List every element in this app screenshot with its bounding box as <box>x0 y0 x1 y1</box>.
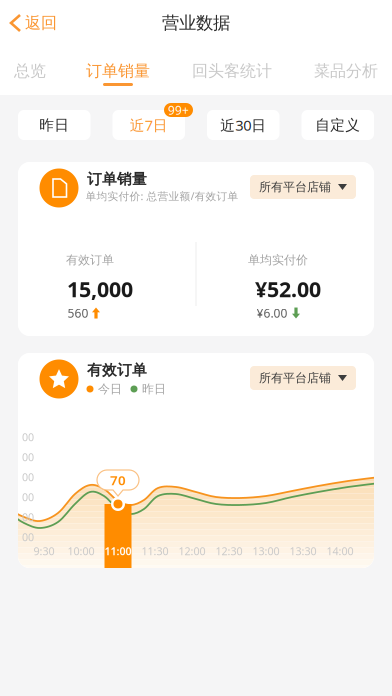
staticText: 00 <box>22 470 34 484</box>
button[interactable]: 昨日 <box>18 110 90 140</box>
staticText: 14:00 <box>326 544 353 558</box>
staticText: 单均实付价 <box>248 253 308 267</box>
staticText: ¥6.00 <box>256 305 287 321</box>
staticText: 订单销量 <box>87 170 147 188</box>
staticText: 菜品分析 <box>314 61 378 81</box>
staticText: 单均实付价: 总营业额/有效订单 <box>85 189 238 203</box>
button[interactable]: 订单销量 <box>70 54 166 88</box>
staticText: 00 <box>22 530 34 544</box>
button[interactable]: 回头客统计 <box>184 54 280 88</box>
staticText: 13:30 <box>289 544 316 558</box>
staticText: 15,000 <box>67 275 133 303</box>
staticText: 自定义 <box>315 116 360 134</box>
staticText: 12:30 <box>215 544 242 558</box>
staticText: 昨日 <box>142 382 166 396</box>
staticText: 10:00 <box>67 544 94 558</box>
staticText: 00 <box>22 490 34 504</box>
staticText: 00 <box>22 450 34 464</box>
button[interactable]: 返回 <box>0 1 67 45</box>
staticText: 有效订单 <box>87 361 147 379</box>
staticText: 12:00 <box>178 544 205 558</box>
button[interactable]: 总览 <box>0 54 78 88</box>
staticText: 11:30 <box>141 544 168 558</box>
staticText: ¥52.00 <box>255 275 321 303</box>
staticText: 00 <box>22 430 34 444</box>
button[interactable]: 所有平台店铺 <box>250 175 356 199</box>
button[interactable]: 近30日 <box>207 110 279 140</box>
staticText: 回头客统计 <box>192 61 272 81</box>
staticText: 所有平台店铺 <box>259 371 331 385</box>
staticText: 560 <box>67 305 88 321</box>
staticText: 13:00 <box>252 544 279 558</box>
staticText: 昨日 <box>39 116 69 134</box>
staticText: 返回 <box>25 13 57 33</box>
staticText: 所有平台店铺 <box>259 180 331 194</box>
staticText: 总览 <box>14 61 46 81</box>
button[interactable]: 菜品分析 <box>298 54 392 88</box>
staticText: 有效订单 <box>66 253 114 267</box>
staticText: 99+ <box>168 102 189 118</box>
button[interactable]: 所有平台店铺 <box>250 366 356 390</box>
button[interactable]: 自定义 <box>301 110 374 140</box>
staticText: 9:30 <box>33 544 54 558</box>
staticText: 70 <box>110 471 126 489</box>
staticText: 近7日 <box>130 115 168 135</box>
staticText: 订单销量 <box>86 61 150 81</box>
staticText: 营业数据 <box>162 12 230 34</box>
staticText: 今日 <box>98 382 122 396</box>
staticText: 00 <box>22 510 34 524</box>
button[interactable]: 近7日 <box>112 110 185 140</box>
staticText: 近30日 <box>220 115 266 135</box>
staticText: 11:00 <box>104 544 131 558</box>
